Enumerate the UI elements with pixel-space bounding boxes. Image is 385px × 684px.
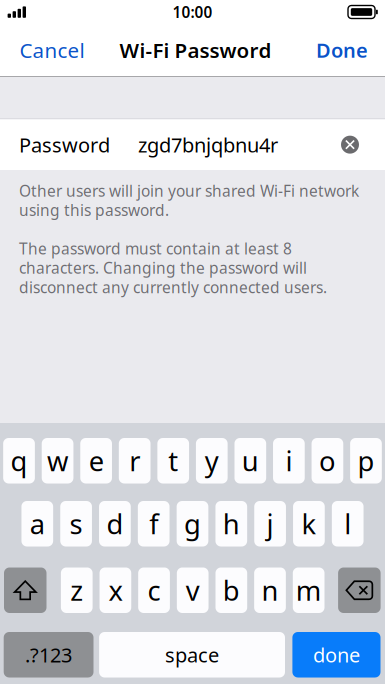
button[interactable]: i: [273, 438, 305, 483]
staticText: f: [149, 505, 158, 542]
button[interactable]: m: [293, 567, 324, 613]
staticText: The password must contain at least 8: [19, 238, 292, 259]
staticText: using this password.: [19, 199, 169, 220]
button[interactable]: space: [99, 632, 285, 677]
staticText: Password: [19, 131, 110, 158]
button[interactable]: Delete: [338, 567, 381, 613]
staticText: t: [168, 442, 178, 479]
button[interactable]: b: [215, 567, 247, 613]
button[interactable]: l: [332, 501, 364, 546]
staticText: u: [242, 442, 259, 479]
button[interactable]: x: [99, 567, 131, 613]
button[interactable]: .?123: [4, 632, 93, 677]
staticText: n: [261, 572, 278, 609]
staticText: x: [108, 572, 122, 609]
button[interactable]: t: [157, 438, 189, 483]
staticText: e: [89, 442, 104, 479]
staticText: r: [129, 442, 140, 479]
button[interactable]: c: [138, 567, 170, 613]
staticText: Cancel: [19, 36, 84, 64]
button[interactable]: done: [292, 632, 380, 677]
button[interactable]: q: [3, 438, 35, 483]
staticText: l: [344, 505, 351, 542]
button[interactable]: o: [312, 438, 343, 483]
staticText: p: [357, 442, 374, 479]
staticText: characters. Changing the password will: [19, 257, 307, 278]
button[interactable]: r: [119, 438, 150, 483]
button[interactable]: k: [293, 501, 325, 546]
button[interactable]: a: [21, 501, 53, 546]
staticText: z: [70, 572, 83, 609]
staticText: zgd7bnjqbnu4r: [138, 131, 278, 158]
button[interactable]: s: [60, 501, 92, 546]
staticText: 10:00: [172, 2, 212, 22]
button[interactable]: Cancel: [0, 24, 96, 76]
staticText: space: [165, 641, 219, 668]
button[interactable]: j: [254, 501, 286, 546]
staticText: q: [10, 442, 27, 479]
staticText: i: [285, 442, 292, 479]
staticText: .?123: [25, 641, 72, 668]
button[interactable]: Password: [0, 119, 385, 170]
staticText: g: [184, 505, 201, 542]
button[interactable]: f: [138, 501, 170, 546]
button[interactable]: d: [99, 501, 131, 546]
staticText: d: [106, 505, 123, 542]
staticText: c: [147, 572, 160, 609]
staticText: v: [186, 572, 200, 609]
staticText: w: [47, 442, 68, 479]
button[interactable]: y: [196, 438, 228, 483]
staticText: b: [223, 572, 240, 609]
button[interactable]: v: [177, 567, 208, 613]
button[interactable]: e: [80, 438, 112, 483]
button[interactable]: n: [254, 567, 286, 613]
button[interactable]: z: [61, 567, 93, 613]
staticText: Other users will join your shared Wi-Fi …: [19, 180, 359, 201]
staticText: h: [223, 505, 240, 542]
staticText: Wi-Fi Password: [119, 36, 271, 64]
staticText: done: [313, 641, 360, 668]
button[interactable]: p: [350, 438, 382, 483]
staticText: y: [205, 442, 219, 479]
button[interactable]: Shift: [4, 567, 46, 613]
staticText: o: [319, 442, 336, 479]
button[interactable]: g: [177, 501, 208, 546]
staticText: Done: [316, 36, 368, 64]
button[interactable]: w: [42, 438, 73, 483]
staticText: k: [301, 505, 316, 542]
staticText: a: [30, 505, 45, 542]
staticText: s: [70, 505, 83, 542]
staticText: j: [267, 505, 274, 542]
staticText: m: [296, 572, 322, 609]
button[interactable]: u: [234, 438, 266, 483]
staticText: disconnect any currently connected users…: [19, 277, 327, 298]
button[interactable]: h: [215, 501, 247, 546]
button[interactable]: Done: [304, 24, 385, 76]
